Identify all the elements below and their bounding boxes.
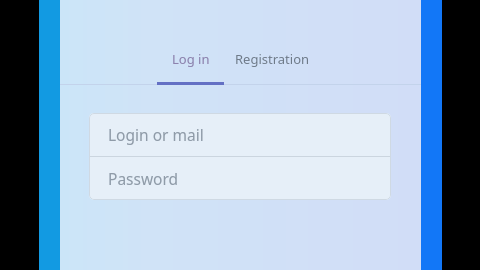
staticText: Login or mail [108,124,204,145]
staticText: Log in [172,50,210,68]
button[interactable]: Registration [230,46,314,84]
staticText: Registration [235,50,310,68]
button[interactable]: Password [89,157,391,200]
staticText: Password [108,168,179,189]
button[interactable]: Log in [157,46,224,84]
button[interactable]: Login or mail [89,113,391,156]
